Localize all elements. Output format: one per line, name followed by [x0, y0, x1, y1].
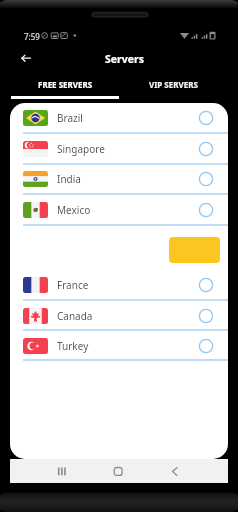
button[interactable]: France [10, 270, 228, 299]
button[interactable]: Advertisement [169, 237, 220, 263]
staticText: Canada [57, 309, 93, 323]
staticText: France [57, 278, 89, 292]
button[interactable]: Back [14, 46, 38, 70]
staticText: Mexico [57, 203, 91, 217]
button[interactable]: FREE SERVERS [11, 77, 119, 99]
button[interactable]: Singapore [10, 134, 228, 163]
button[interactable]: Brazil [10, 103, 228, 132]
button[interactable]: Canada [10, 301, 228, 330]
staticText: Turkey [57, 339, 89, 353]
staticText: FREE SERVERS [38, 79, 93, 90]
staticText: Brazil [57, 111, 83, 125]
button[interactable]: India [10, 164, 228, 193]
staticText: Servers [105, 52, 144, 66]
button[interactable]: VIP SERVERS [119, 77, 228, 99]
staticText: VIP SERVERS [149, 79, 198, 90]
staticText: 7:59 [24, 31, 40, 42]
staticText: India [57, 172, 81, 186]
staticText: Singapore [57, 142, 105, 156]
button[interactable]: Mexico [10, 195, 228, 224]
button[interactable]: Turkey [10, 331, 228, 360]
